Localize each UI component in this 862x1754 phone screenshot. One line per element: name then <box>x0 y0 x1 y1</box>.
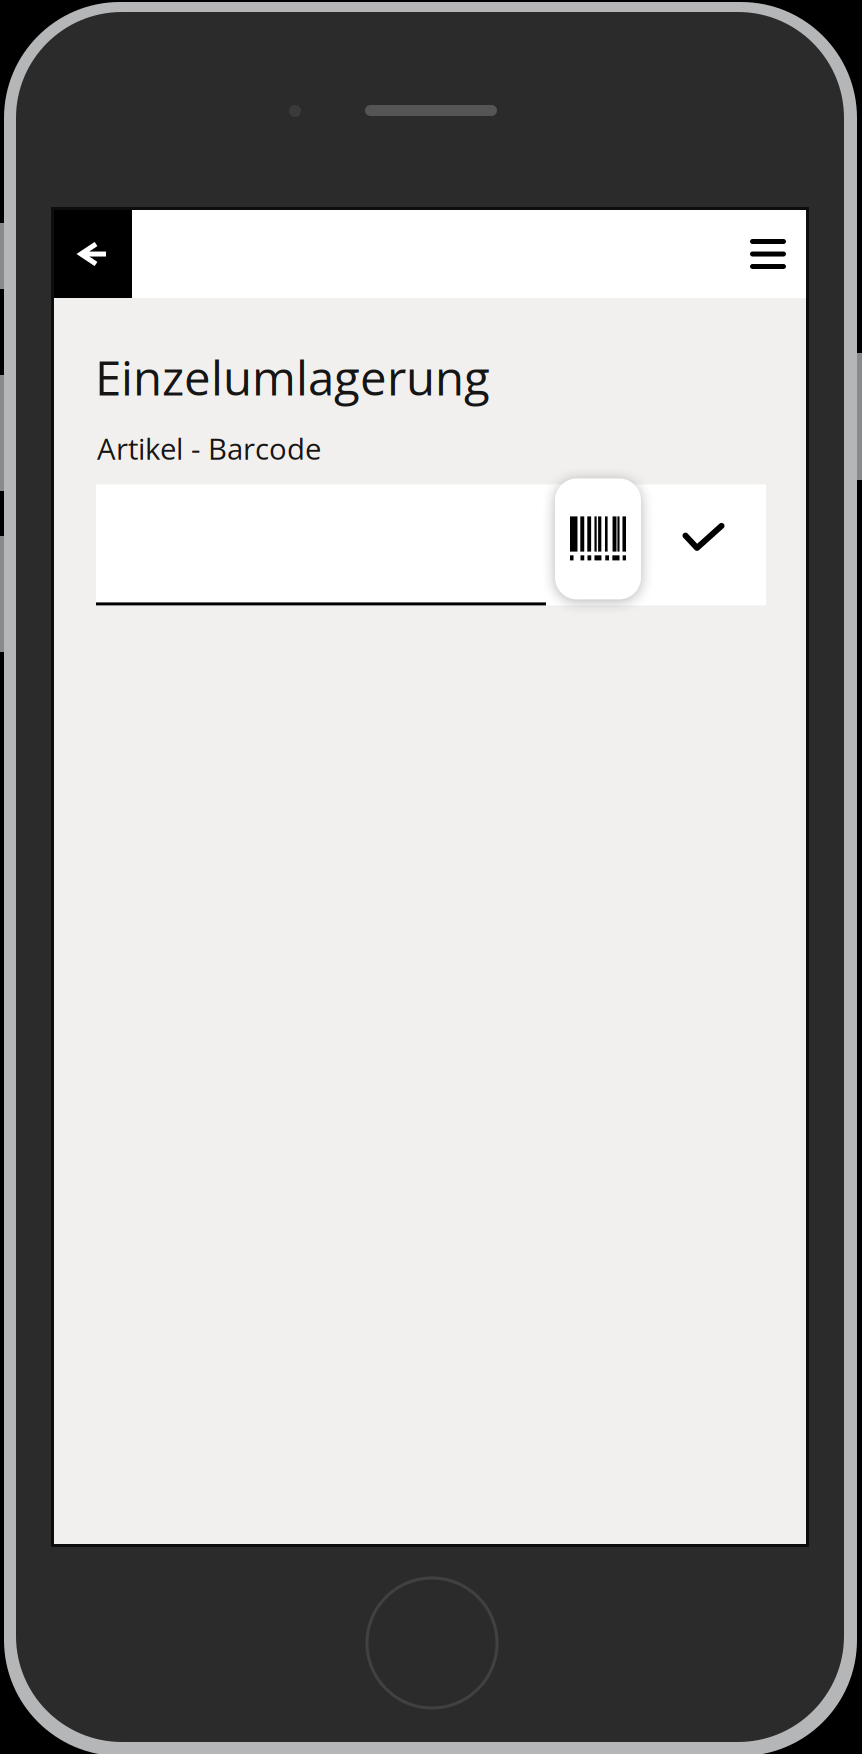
staticText: Einzelumlagerung <box>95 345 490 409</box>
button[interactable]: Menu <box>724 210 812 298</box>
button[interactable]: Back <box>54 210 132 298</box>
button[interactable]: Confirm <box>641 484 766 605</box>
staticText: Artikel - Barcode <box>97 428 321 468</box>
button[interactable]: Scan barcode <box>555 478 641 599</box>
